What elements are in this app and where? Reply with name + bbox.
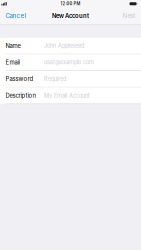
button[interactable]: Description xyxy=(0,87,141,104)
staticText: Required xyxy=(44,75,66,82)
staticText: Password xyxy=(6,75,34,82)
staticText: 12:00 PM xyxy=(60,1,80,6)
button[interactable]: Email xyxy=(0,54,141,71)
staticText: Email xyxy=(6,59,20,66)
staticText: user@example.com xyxy=(44,59,94,66)
button[interactable]: Next xyxy=(119,7,141,24)
staticText: New Account xyxy=(52,12,89,19)
button[interactable]: Password xyxy=(0,71,141,87)
staticText: Cancel xyxy=(6,12,26,19)
button[interactable]: Cancel xyxy=(0,7,29,24)
staticText: Name xyxy=(6,42,21,49)
staticText: Next xyxy=(122,12,135,19)
button[interactable]: Name xyxy=(0,38,141,54)
staticText: John Appleseed xyxy=(44,42,84,49)
staticText: Description xyxy=(6,92,36,99)
staticText: My Email Account xyxy=(44,92,90,99)
